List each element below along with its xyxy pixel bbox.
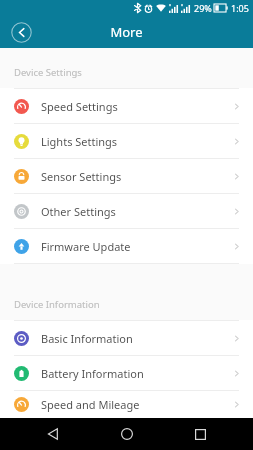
button[interactable]: Basic Information xyxy=(0,321,253,355)
staticText: 29% xyxy=(194,2,212,14)
button[interactable]: Other Settings xyxy=(0,194,253,228)
staticText: Other Settings xyxy=(41,204,116,219)
staticText: Device Settings xyxy=(14,66,82,79)
button[interactable]: Lights Settings xyxy=(0,124,253,158)
button[interactable]: Battery Information xyxy=(0,356,253,390)
staticText: 1:05 xyxy=(231,2,249,14)
button[interactable]: Recent apps xyxy=(180,418,220,450)
staticText: More xyxy=(110,23,143,41)
staticText: Sensor Settings xyxy=(41,169,122,184)
button[interactable]: Speed Settings xyxy=(0,89,253,123)
staticText: Lights Settings xyxy=(41,134,118,149)
button[interactable]: Sensor Settings xyxy=(0,159,253,193)
button[interactable]: Home xyxy=(107,418,147,450)
staticText: Speed Settings xyxy=(41,99,118,114)
staticText: Firmware Update xyxy=(41,239,131,254)
staticText: Battery Information xyxy=(41,366,144,381)
staticText: Basic Information xyxy=(41,331,133,346)
button[interactable]: Speed and Mileage xyxy=(0,391,253,418)
staticText: Device Information xyxy=(14,298,100,311)
button[interactable]: Back xyxy=(9,20,33,44)
staticText: Speed and Mileage xyxy=(41,397,140,412)
button[interactable]: Firmware Update xyxy=(0,229,253,263)
button[interactable]: Back xyxy=(33,418,73,450)
